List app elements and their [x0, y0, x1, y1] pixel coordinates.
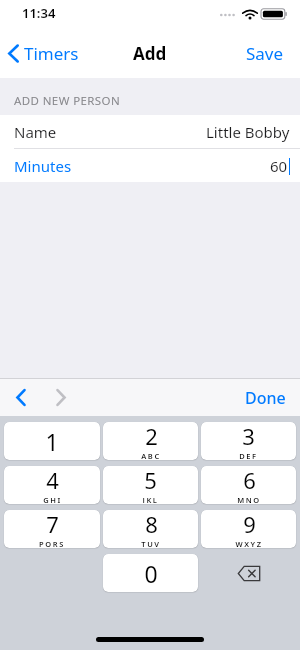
staticText: 6 [243, 466, 256, 495]
staticText: ADD NEW PERSON [14, 93, 121, 109]
staticText: Add [133, 42, 167, 65]
staticText: Minutes [14, 156, 72, 176]
button[interactable]: Timers [0, 36, 89, 71]
staticText: 11:34 [22, 4, 56, 22]
staticText: Little Bobby [206, 122, 290, 142]
staticText: PQRS [39, 539, 65, 547]
staticText: 5 [144, 466, 157, 495]
staticText: 2 [145, 422, 158, 451]
staticText: 3 [242, 422, 255, 451]
button[interactable]: Delete [201, 554, 296, 592]
button[interactable]: 3 [201, 422, 296, 460]
staticText: DEF [239, 451, 258, 459]
button[interactable]: Name [0, 115, 300, 148]
staticText: Done [245, 387, 286, 408]
staticText: Save [246, 42, 284, 65]
staticText: 1 [45, 426, 59, 457]
staticText: 60 [270, 156, 288, 176]
button[interactable]: 2 [103, 422, 198, 460]
button[interactable]: Save [230, 34, 300, 73]
staticText: 8 [145, 510, 158, 539]
staticText: 0 [144, 558, 158, 589]
staticText: 4 [46, 466, 59, 495]
button[interactable]: 1 [4, 422, 100, 460]
button[interactable]: 5 [103, 466, 198, 504]
button[interactable]: Done [231, 379, 300, 416]
button[interactable]: 8 [103, 510, 198, 548]
staticText: MNO [237, 495, 261, 503]
button[interactable]: 0 [103, 554, 198, 592]
button[interactable]: Next field [48, 383, 74, 412]
button[interactable]: 4 [4, 466, 100, 504]
staticText: TUV [141, 539, 161, 547]
staticText: Name [14, 122, 57, 142]
button[interactable]: 6 [201, 466, 296, 504]
staticText: JKL [142, 495, 159, 503]
button[interactable]: 7 [4, 510, 100, 548]
button[interactable]: Previous field [8, 383, 34, 412]
staticText: Timers [24, 42, 79, 65]
staticText: 9 [243, 510, 256, 539]
staticText: ABC [141, 451, 161, 459]
staticText: WXYZ [235, 539, 263, 547]
button[interactable]: 9 [201, 510, 296, 548]
staticText: 7 [46, 510, 59, 539]
staticText: GHI [43, 495, 62, 503]
button[interactable]: Minutes [0, 149, 300, 182]
